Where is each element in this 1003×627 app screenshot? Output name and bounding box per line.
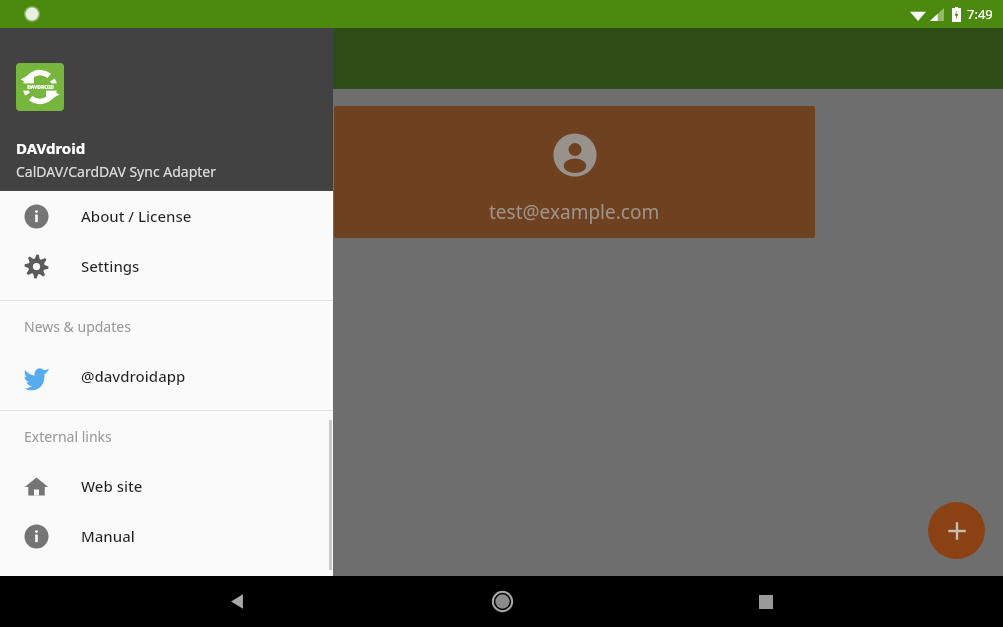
staticText: Settings bbox=[81, 256, 140, 276]
staticText: DAVdroid bbox=[16, 138, 86, 158]
button[interactable]: Settings bbox=[0, 241, 333, 291]
staticText: News & updates bbox=[24, 317, 131, 336]
button[interactable]: Add account bbox=[928, 502, 985, 559]
button[interactable]: @davdroidapp bbox=[0, 351, 333, 401]
staticText: Manual bbox=[81, 526, 135, 546]
staticText: 7:49 bbox=[967, 5, 993, 23]
button[interactable]: About / License bbox=[0, 191, 333, 241]
button[interactable]: DAVDROID bbox=[0, 28, 333, 191]
button[interactable]: Web site bbox=[0, 461, 333, 511]
staticText: test@example.com bbox=[489, 199, 660, 225]
staticText: CalDAV/CardDAV Sync Adapter bbox=[16, 162, 217, 181]
staticText: @davdroidapp bbox=[81, 366, 186, 386]
button[interactable]: Manual bbox=[0, 511, 333, 561]
button[interactable]: Recent apps bbox=[738, 576, 794, 627]
button[interactable]: Home bbox=[474, 576, 530, 627]
staticText: DAVDROID bbox=[27, 84, 54, 91]
staticText: External links bbox=[24, 427, 112, 446]
button[interactable]: Back bbox=[209, 576, 265, 627]
button[interactable]: test@example.com bbox=[334, 106, 815, 238]
staticText: Web site bbox=[81, 476, 143, 496]
staticText: About / License bbox=[81, 206, 192, 226]
